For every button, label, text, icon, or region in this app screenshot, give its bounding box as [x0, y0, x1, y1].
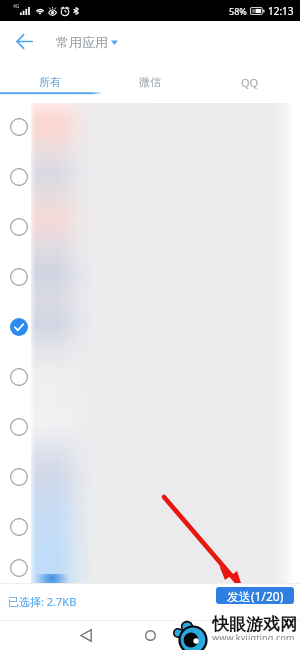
staticText: QQ [241, 75, 259, 90]
staticText: 微信 [139, 75, 161, 89]
staticText: 4G [13, 3, 20, 10]
button[interactable] [0, 152, 300, 202]
button[interactable]: 发送(1/20) [216, 587, 294, 604]
staticText: 常用应用 [56, 34, 108, 50]
staticText: 发送(1/20) [227, 588, 284, 604]
button[interactable] [0, 402, 300, 452]
button[interactable]: QQ [200, 75, 300, 92]
button[interactable]: Back [71, 620, 101, 650]
staticText: www.kyiigting.com [212, 631, 295, 640]
staticText: 58% [229, 5, 247, 17]
button[interactable]: 所有 [0, 75, 100, 92]
button[interactable] [0, 202, 300, 252]
button[interactable] [0, 452, 300, 502]
staticText: 快眼游戏网 [212, 614, 297, 635]
button[interactable] [0, 252, 300, 302]
staticText: 已选择: 2.7KB [8, 594, 77, 609]
button[interactable]: 常用应用 [56, 34, 118, 50]
staticText: 12:13 [268, 4, 294, 18]
button[interactable]: Home [135, 620, 165, 650]
button[interactable] [0, 102, 300, 152]
staticText: 所有 [39, 75, 61, 89]
button[interactable] [0, 302, 300, 352]
button[interactable]: 微信 [100, 75, 200, 92]
button[interactable] [0, 352, 300, 402]
button[interactable] [0, 552, 300, 583]
button[interactable]: Back [0, 21, 48, 62]
button[interactable] [0, 502, 300, 552]
